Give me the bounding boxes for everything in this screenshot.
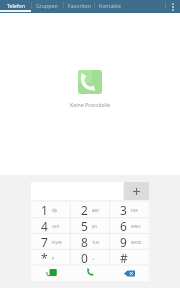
button[interactable]: 6 (110, 218, 149, 234)
button[interactable]: Add (124, 182, 149, 200)
staticText: JKL (92, 224, 98, 229)
staticText: GHI (52, 224, 60, 229)
staticText: 3 (120, 202, 127, 218)
button[interactable]: 7 (31, 234, 71, 250)
staticText: ABC (92, 208, 100, 213)
staticText: Gruppen (36, 2, 58, 9)
button[interactable]: Call (71, 265, 110, 281)
button[interactable]: Favoriten (63, 0, 95, 13)
button[interactable]: 8 (71, 234, 110, 250)
staticText: 0 (81, 250, 88, 266)
staticText: P (52, 256, 55, 261)
button[interactable]: 4 (31, 218, 71, 234)
staticText: MNO (131, 224, 141, 229)
staticText: TUV (92, 240, 100, 245)
staticText: 1 (41, 202, 48, 218)
staticText: PQRS (52, 240, 62, 245)
staticText: Favoriten (68, 2, 91, 9)
button[interactable]: 2 (71, 202, 110, 218)
button[interactable]: More options (166, 0, 180, 13)
button[interactable]: * (31, 250, 71, 266)
button[interactable]: # (110, 250, 149, 266)
staticText: 6 (120, 218, 127, 234)
staticText: Keine Protokolle (0, 101, 180, 108)
staticText: + (92, 256, 95, 261)
staticText: WXYZ (131, 240, 142, 245)
button[interactable]: 3 (110, 202, 149, 218)
button[interactable]: Kontakte (94, 0, 125, 13)
button[interactable]: Telefon (0, 0, 31, 13)
staticText: 7 (41, 234, 48, 250)
staticText: 4 (41, 218, 48, 234)
staticText: * (41, 250, 48, 266)
staticText: DEF (131, 208, 139, 213)
button[interactable]: 1 (31, 202, 71, 218)
button[interactable]: Backspace (110, 265, 149, 281)
staticText: 5 (81, 218, 88, 234)
button[interactable]: 5 (71, 218, 110, 234)
staticText: 2 (81, 202, 88, 218)
staticText: # (120, 250, 128, 266)
button[interactable]: 0 (71, 250, 110, 266)
staticText: 9 (120, 234, 127, 250)
button[interactable]: Gruppen (31, 0, 63, 13)
staticText: 8 (81, 234, 88, 250)
button[interactable]: 9 (110, 234, 149, 250)
staticText: Telefon (7, 2, 25, 9)
staticText: Kontakte (99, 2, 121, 9)
button[interactable]: Add contact (31, 265, 71, 281)
